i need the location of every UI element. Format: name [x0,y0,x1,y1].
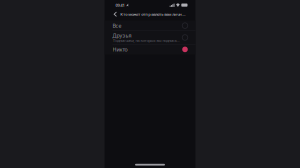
button[interactable]: Все [104,21,195,31]
staticText: Кто может отправлять вам личные сообщени… [120,11,187,17]
staticText: Все [112,22,121,29]
button[interactable]: Друзья [104,31,195,44]
staticText: Никто [112,46,127,53]
staticText: Подписчики, на которых вы подписаны [112,38,179,43]
button[interactable]: Back [110,9,120,19]
button[interactable]: Никто [104,44,195,54]
staticText: 09:41 [115,2,124,8]
staticText: Друзья [112,32,131,39]
